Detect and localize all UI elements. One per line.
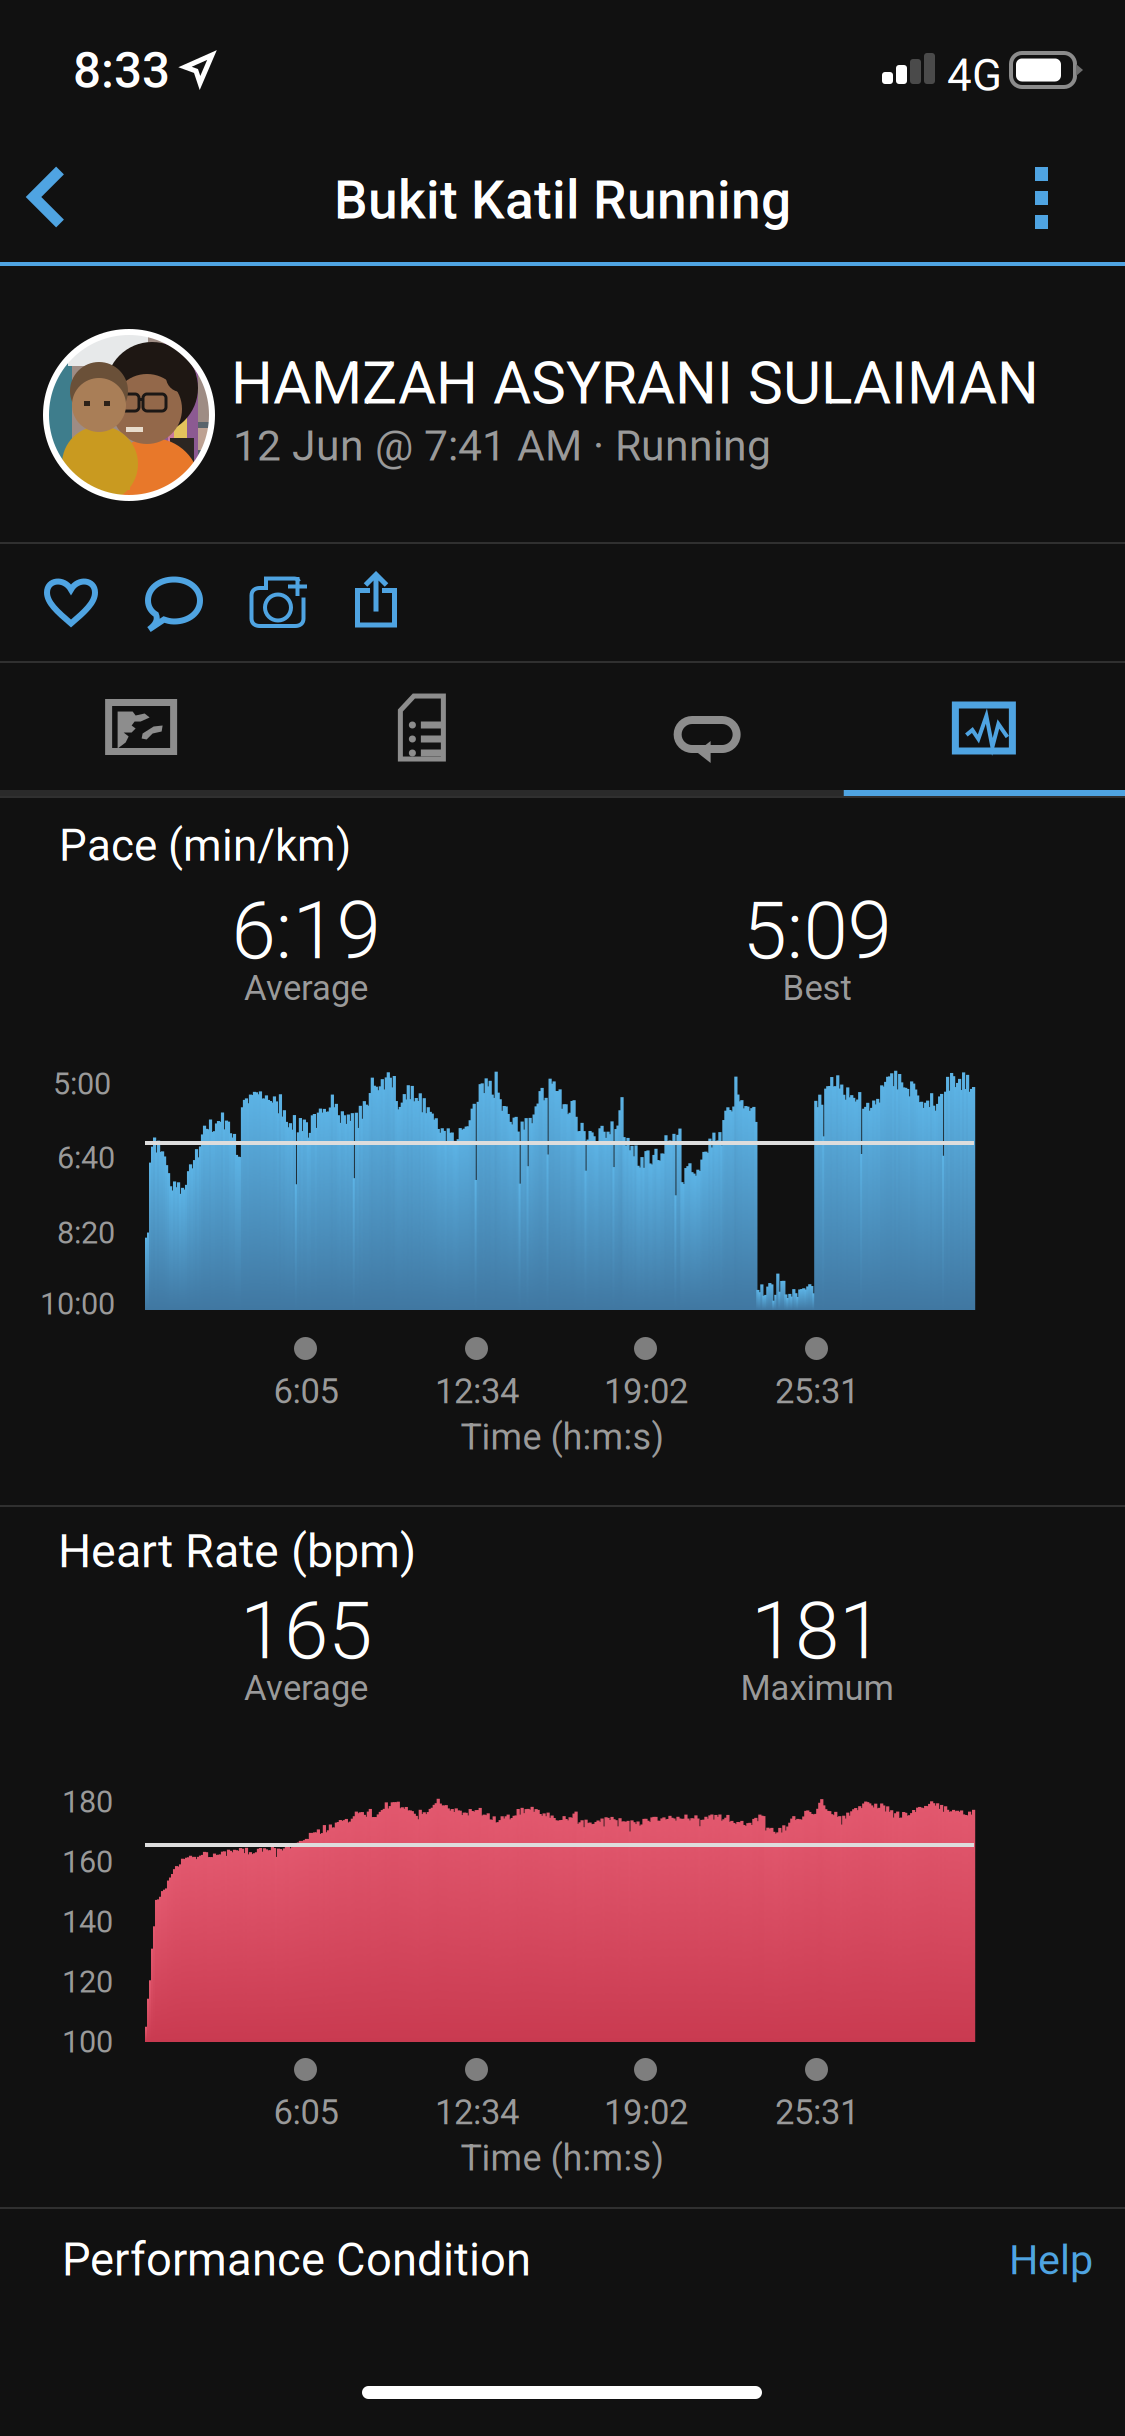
staticText: Best bbox=[782, 968, 851, 1008]
staticText: 8:20 bbox=[57, 1215, 115, 1251]
staticText: Average bbox=[244, 968, 368, 1008]
staticText: Time (h:m:s) bbox=[460, 1416, 664, 1458]
staticText: Bukit Katil Running bbox=[334, 169, 791, 231]
staticText: HAMZAH ASYRANI SULAIMAN bbox=[231, 349, 1039, 418]
staticText: 120 bbox=[62, 1964, 113, 2000]
button[interactable]: Like bbox=[21, 544, 123, 661]
button[interactable]: Add photo bbox=[225, 544, 327, 661]
staticText: 6:40 bbox=[57, 1140, 115, 1176]
staticText: Average bbox=[244, 1668, 368, 1708]
staticText: Time (h:m:s) bbox=[460, 2137, 664, 2179]
button[interactable]: Share bbox=[327, 544, 429, 661]
button[interactable]: Laps bbox=[562, 663, 844, 790]
staticText: Maximum bbox=[740, 1668, 893, 1708]
button[interactable]: Details bbox=[281, 663, 562, 790]
staticText: 12:34 bbox=[435, 2092, 519, 2133]
staticText: 165 bbox=[240, 1584, 372, 1678]
button[interactable]: Charts bbox=[844, 663, 1125, 790]
staticText: 160 bbox=[62, 1844, 113, 1880]
staticText: 6:05 bbox=[273, 1371, 338, 1412]
staticText: 5:00 bbox=[53, 1066, 111, 1102]
staticText: 5:09 bbox=[742, 884, 891, 978]
staticText: Heart Rate (bpm) bbox=[58, 1524, 416, 1579]
button[interactable]: Map bbox=[0, 663, 281, 790]
staticText: 6:05 bbox=[273, 2092, 338, 2133]
button[interactable]: More options bbox=[991, 138, 1092, 258]
staticText: 19:02 bbox=[604, 1371, 688, 1412]
staticText: 140 bbox=[62, 1904, 113, 1940]
button[interactable]: Comment bbox=[123, 544, 225, 661]
staticText: 12:34 bbox=[435, 1371, 519, 1412]
staticText: 100 bbox=[62, 2024, 113, 2060]
staticText: 8:33 bbox=[73, 42, 170, 100]
staticText: 6:19 bbox=[231, 884, 380, 978]
staticText: Pace (min/km) bbox=[59, 820, 351, 872]
staticText: 10:00 bbox=[40, 1286, 115, 1322]
staticText: Help bbox=[1009, 2236, 1093, 2284]
button[interactable]: Back bbox=[0, 152, 90, 244]
button[interactable]: Performance Condition bbox=[0, 2200, 1125, 2320]
staticText: 181 bbox=[751, 1584, 883, 1678]
staticText: Performance Condition bbox=[62, 2233, 531, 2286]
staticText: 19:02 bbox=[604, 2092, 688, 2133]
staticText: 12 Jun @ 7:41 AM · Running bbox=[233, 421, 771, 471]
staticText: 180 bbox=[62, 1784, 113, 1820]
staticText: 25:31 bbox=[775, 1371, 859, 1412]
staticText: 4G bbox=[947, 50, 1002, 102]
staticText: 25:31 bbox=[775, 2092, 859, 2133]
